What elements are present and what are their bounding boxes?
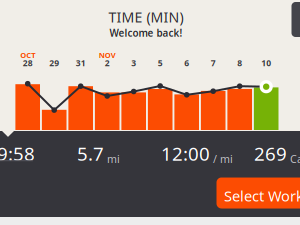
- staticText: 12:00: [161, 141, 210, 166]
- staticText: 29: [49, 57, 59, 69]
- staticText: 6: [184, 57, 189, 69]
- staticText: 5: [158, 57, 163, 69]
- button[interactable]: More: [291, 2, 300, 37]
- staticText: NOV: [99, 50, 116, 60]
- staticText: 10: [261, 57, 271, 69]
- staticText: Cal: [290, 152, 300, 166]
- staticText: 269: [254, 141, 287, 166]
- staticText: 9:58: [0, 141, 35, 166]
- staticText: mi: [107, 152, 120, 166]
- staticText: 28: [23, 57, 33, 69]
- staticText: 8: [237, 57, 242, 69]
- staticText: Select Workout: [224, 186, 300, 205]
- staticText: / mi: [213, 152, 233, 166]
- staticText: OCT: [20, 50, 35, 60]
- button[interactable]: 5.7: [77, 141, 115, 169]
- staticText: 2: [105, 57, 110, 69]
- staticText: 5.7: [77, 141, 104, 166]
- staticText: 31: [76, 57, 86, 69]
- staticText: 7: [211, 57, 216, 69]
- staticText: 3: [131, 57, 136, 69]
- staticText: TIME (MIN): [108, 7, 183, 27]
- staticText: Welcome back!: [109, 26, 182, 40]
- button[interactable]: 9:58: [0, 141, 33, 169]
- button[interactable]: 269: [254, 141, 300, 169]
- button[interactable]: 12:00: [161, 141, 222, 169]
- button[interactable]: Select Workout: [216, 177, 300, 208]
